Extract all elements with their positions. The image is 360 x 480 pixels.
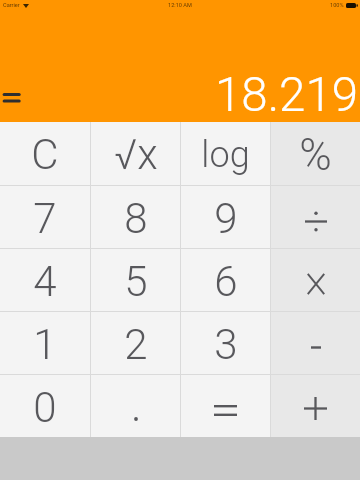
staticText: 100% bbox=[330, 2, 344, 9]
button[interactable]: 7 bbox=[0, 186, 90, 248]
staticText: 4 bbox=[33, 257, 57, 306]
button[interactable]: 2 bbox=[91, 312, 180, 374]
staticText: % bbox=[299, 129, 332, 181]
staticText: 3 bbox=[214, 320, 238, 369]
button[interactable]: 6 bbox=[181, 249, 270, 311]
staticText: C bbox=[31, 130, 59, 179]
button[interactable]: 5 bbox=[91, 249, 180, 311]
button[interactable] bbox=[91, 375, 180, 437]
staticText: 1 bbox=[33, 320, 57, 369]
button[interactable]: % bbox=[271, 122, 360, 185]
button[interactable]: C bbox=[0, 122, 90, 185]
staticText: 12:10 AM bbox=[168, 2, 192, 9]
staticText: 2 bbox=[124, 320, 148, 369]
staticText: √x bbox=[114, 130, 158, 179]
staticText: 18.219 bbox=[215, 67, 359, 123]
staticText: 8 bbox=[124, 194, 148, 243]
button[interactable]: 1 bbox=[0, 312, 90, 374]
button[interactable] bbox=[271, 312, 360, 374]
button[interactable]: 8 bbox=[91, 186, 180, 248]
button[interactable] bbox=[181, 375, 270, 437]
staticText: 7 bbox=[33, 194, 57, 243]
staticText: 5 bbox=[124, 257, 148, 306]
button[interactable]: 0 bbox=[0, 375, 90, 437]
button[interactable]: 4 bbox=[0, 249, 90, 311]
button[interactable]: Menu bbox=[1, 86, 25, 110]
staticText: Carrier bbox=[3, 2, 20, 9]
staticText: 6 bbox=[214, 257, 238, 306]
staticText: log bbox=[201, 134, 250, 176]
button[interactable] bbox=[271, 249, 360, 311]
staticText: 0 bbox=[33, 383, 57, 432]
button[interactable] bbox=[271, 186, 360, 248]
button[interactable]: log bbox=[181, 122, 270, 185]
button[interactable] bbox=[271, 375, 360, 437]
button[interactable]: √x bbox=[91, 122, 180, 185]
button[interactable]: 9 bbox=[181, 186, 270, 248]
staticText: 9 bbox=[214, 194, 238, 243]
button[interactable]: 3 bbox=[181, 312, 270, 374]
